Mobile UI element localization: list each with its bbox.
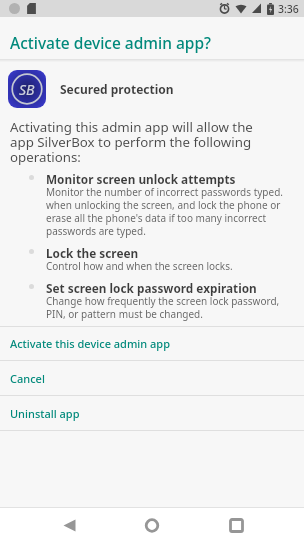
staticText: Activate this device admin app [10,336,170,351]
staticText: Activating this admin app will allow the… [10,118,253,166]
button[interactable] [203,508,304,543]
button[interactable]: Uninstall app [0,396,304,430]
staticText: Cancel [10,371,45,386]
button[interactable] [0,508,102,543]
button[interactable]: Activate this device admin app [0,327,304,360]
staticText: Uninstall app [10,406,80,421]
button[interactable]: Cancel [0,361,304,395]
staticText: SB [19,80,35,99]
staticText: Activate device admin app? [10,32,211,53]
staticText: Lock the screen Control how and when the… [46,245,233,273]
staticText: Secured protection [60,81,174,97]
staticText: 3:36 [278,2,299,16]
button[interactable] [102,508,203,543]
staticText: Monitor screen unlock attempts Monitor t… [46,171,283,238]
staticText: Set screen lock password expiration Chan… [46,280,280,321]
